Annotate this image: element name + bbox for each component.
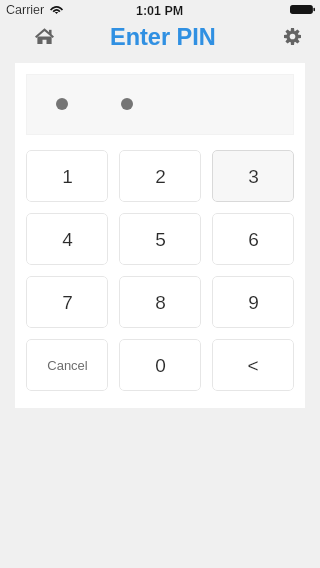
staticText: 1 bbox=[62, 166, 73, 187]
staticText: 6 bbox=[248, 229, 259, 250]
staticText: 7 bbox=[62, 292, 73, 313]
button[interactable]: Home bbox=[30, 22, 58, 50]
staticText: < bbox=[247, 355, 259, 376]
button[interactable]: < bbox=[212, 339, 294, 391]
button[interactable]: 4 bbox=[26, 213, 108, 265]
button[interactable]: 3 bbox=[212, 150, 294, 202]
staticText: 8 bbox=[155, 292, 166, 313]
staticText: 9 bbox=[248, 292, 259, 313]
staticText: 2 bbox=[155, 166, 166, 187]
button[interactable]: 7 bbox=[26, 276, 108, 328]
staticText: Carrier bbox=[6, 3, 45, 17]
button[interactable]: 0 bbox=[119, 339, 201, 391]
staticText: 4 bbox=[62, 229, 73, 250]
button[interactable]: Settings bbox=[278, 22, 306, 50]
staticText: 5 bbox=[155, 229, 166, 250]
button[interactable]: Cancel bbox=[26, 339, 108, 391]
staticText: 1:01 PM bbox=[136, 4, 184, 18]
button[interactable]: 5 bbox=[119, 213, 201, 265]
button[interactable]: 9 bbox=[212, 276, 294, 328]
button[interactable]: 6 bbox=[212, 213, 294, 265]
button[interactable]: 8 bbox=[119, 276, 201, 328]
button[interactable]: 2 bbox=[119, 150, 201, 202]
button[interactable]: 1 bbox=[26, 150, 108, 202]
staticText: 0 bbox=[155, 355, 166, 376]
staticText: Enter PIN bbox=[110, 24, 216, 50]
staticText: Cancel bbox=[47, 358, 88, 373]
staticText: 3 bbox=[248, 166, 259, 187]
